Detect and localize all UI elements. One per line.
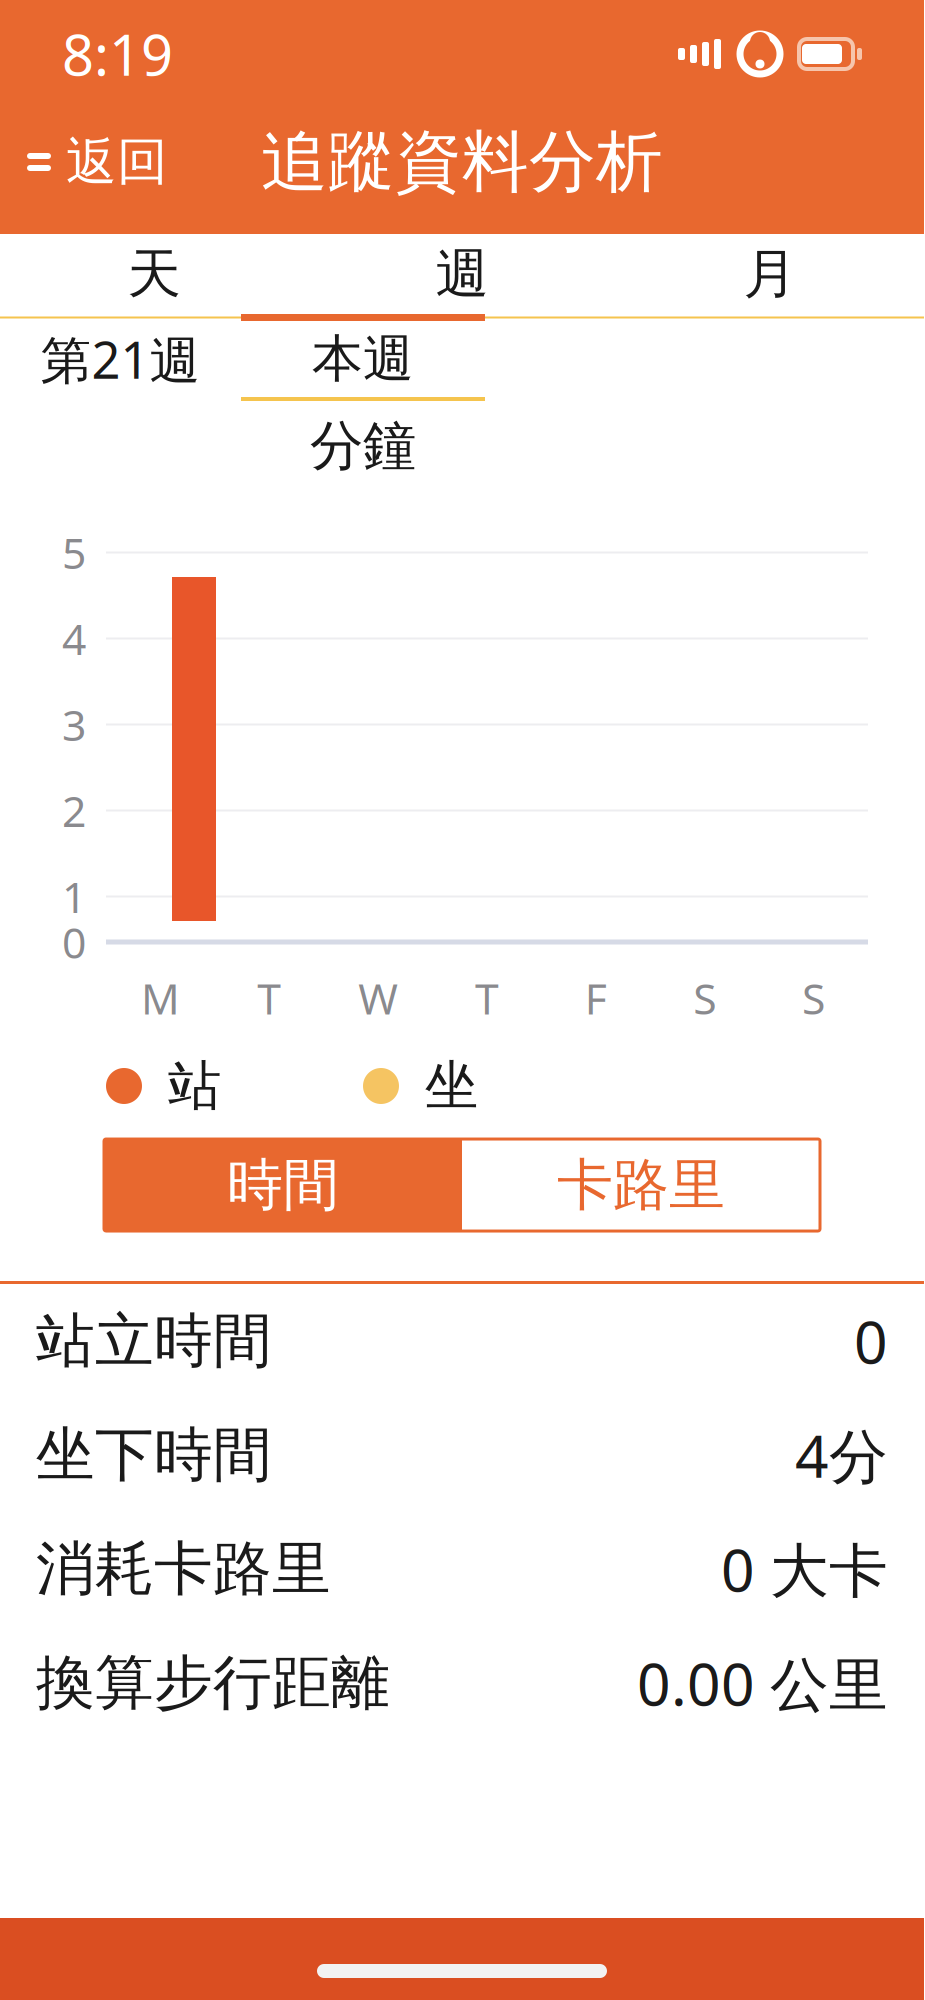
staticText: 本週	[312, 328, 414, 390]
staticText: 站立時間	[36, 1305, 272, 1377]
staticText: S	[802, 970, 825, 1026]
button[interactable]: 月	[616, 234, 924, 314]
staticText: 天	[127, 241, 180, 307]
staticText: S	[693, 970, 716, 1026]
staticText: 時間	[227, 1151, 339, 1219]
button[interactable]: 返回	[0, 115, 192, 209]
button[interactable]: 本週	[241, 321, 485, 397]
staticText: 0	[854, 1302, 888, 1380]
button[interactable]: 第21週	[0, 321, 241, 397]
staticText: 1	[62, 868, 86, 925]
button[interactable]: 週	[308, 234, 616, 314]
staticText: 卡路里	[557, 1151, 725, 1219]
staticText: 坐下時間	[36, 1419, 272, 1491]
staticText: 月	[743, 241, 796, 307]
staticText: M	[141, 970, 180, 1026]
staticText: 3	[62, 696, 86, 753]
staticText: 消耗卡路里	[36, 1533, 331, 1605]
staticText: 追蹤資料分析	[261, 121, 663, 203]
staticText: 0.00 公里	[637, 1644, 888, 1722]
staticText: 返回	[66, 131, 168, 193]
button[interactable]: 時間	[104, 1139, 462, 1231]
staticText: W	[358, 970, 398, 1026]
staticText: 8:19	[62, 17, 173, 91]
staticText: 4分	[795, 1416, 888, 1494]
staticText: 坐	[425, 1053, 478, 1119]
staticText: 0 大卡	[721, 1530, 888, 1608]
staticText: 站	[168, 1053, 221, 1119]
staticText: 0	[62, 914, 86, 970]
staticText: 換算步行距離	[36, 1647, 390, 1719]
staticText: 2	[62, 782, 86, 839]
staticText: T	[475, 970, 499, 1026]
staticText: T	[257, 970, 281, 1026]
staticText: F	[585, 970, 607, 1026]
staticText: 第21週	[40, 325, 200, 393]
staticText: 5	[62, 524, 86, 581]
button[interactable]: 卡路里	[462, 1139, 820, 1231]
staticText: 4	[62, 610, 86, 667]
button[interactable]: 天	[0, 234, 308, 314]
staticText: 週	[435, 241, 488, 307]
staticText: 分鐘	[310, 413, 416, 479]
